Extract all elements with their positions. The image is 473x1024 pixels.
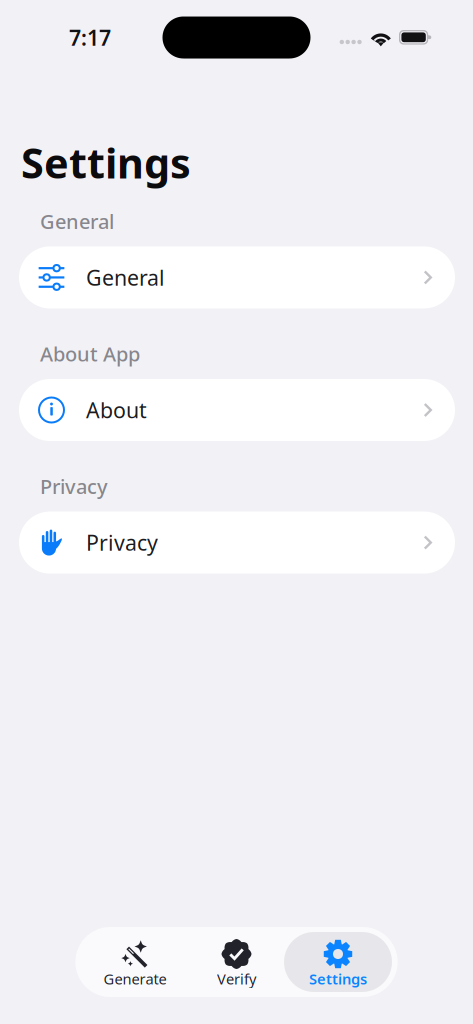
staticText: 7:17 [69, 23, 111, 52]
button[interactable]: Generate [84, 932, 186, 992]
button[interactable]: Settings [287, 932, 389, 992]
staticText: Privacy [86, 528, 158, 557]
staticText: Generate [103, 969, 166, 988]
staticText: General [40, 208, 114, 234]
button[interactable]: General [19, 246, 455, 308]
staticText: Verify [217, 969, 256, 988]
button[interactable]: Privacy [19, 512, 455, 574]
staticText: Settings [21, 135, 191, 190]
staticText: About App [40, 340, 140, 367]
button[interactable]: About [19, 379, 455, 441]
staticText: Privacy [40, 473, 108, 500]
staticText: General [86, 263, 165, 292]
staticText: Settings [309, 969, 367, 988]
button[interactable]: Verify [186, 932, 287, 992]
staticText: About [86, 396, 147, 424]
